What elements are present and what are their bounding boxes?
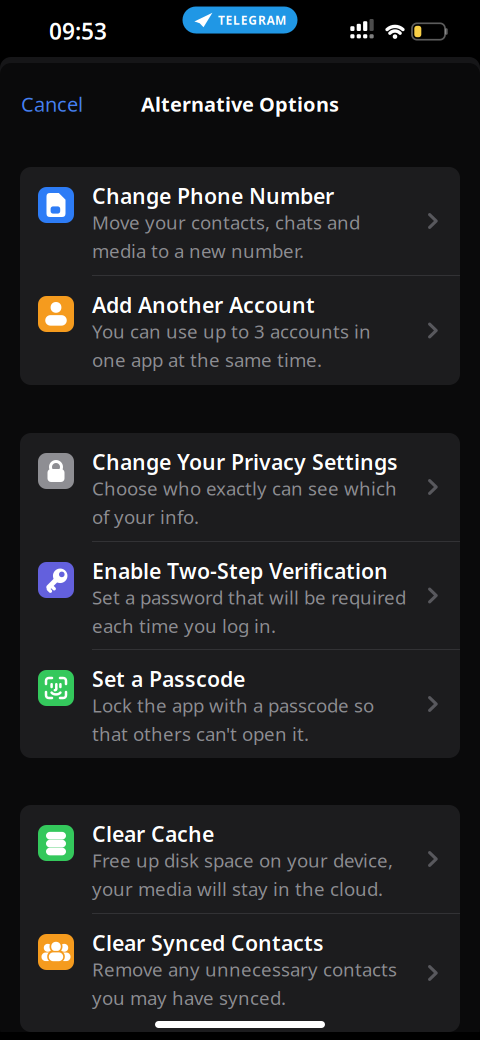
- staticText: Move your contacts, chats and media to a…: [92, 210, 360, 263]
- button[interactable]: Add Another Account: [20, 276, 460, 385]
- staticText: Change Phone Number: [92, 181, 334, 210]
- button[interactable]: Set a Passcode: [20, 650, 460, 758]
- button[interactable]: Change Phone Number: [20, 167, 460, 275]
- staticText: Alternative Options: [141, 91, 339, 117]
- staticText: Change Your Privacy Settings: [92, 447, 398, 476]
- staticText: Free up disk space on your device, your …: [92, 848, 393, 901]
- button[interactable]: Change Your Privacy Settings: [20, 433, 460, 541]
- staticText: Set a Passcode: [92, 664, 245, 693]
- button[interactable]: Clear Cache: [20, 805, 460, 913]
- staticText: Choose who exactly can see which of your…: [92, 476, 397, 529]
- button[interactable]: Clear Synced Contacts: [20, 914, 460, 1032]
- staticText: Remove any unnecessary contacts you may …: [92, 957, 397, 1010]
- staticText: Enable Two-Step Verification: [92, 556, 388, 585]
- button[interactable]: Cancel: [21, 91, 83, 117]
- staticText: Clear Synced Contacts: [92, 928, 324, 957]
- staticText: Set a password that will be required eac…: [92, 585, 406, 638]
- button[interactable]: Return to Telegram: [182, 6, 297, 33]
- staticText: 09:53: [49, 16, 107, 46]
- staticText: Cancel: [21, 91, 83, 117]
- staticText: TELEGRAM: [218, 12, 286, 28]
- staticText: Clear Cache: [92, 819, 214, 848]
- staticText: Add Another Account: [92, 290, 315, 319]
- staticText: You can use up to 3 accounts in one app …: [92, 319, 371, 372]
- button[interactable]: Enable Two-Step Verification: [20, 542, 460, 649]
- staticText: Lock the app with a passcode so that oth…: [92, 693, 374, 746]
